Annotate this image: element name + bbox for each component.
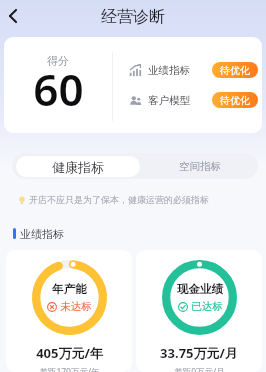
staticText: 60 (33, 59, 84, 119)
staticText: 现金业绩 (177, 282, 223, 296)
button[interactable]: 业绩指标 (129, 62, 262, 78)
button[interactable]: 客户模型 (129, 92, 262, 108)
staticText: 待优化 (220, 94, 250, 107)
staticText: 405万元/年 (36, 344, 103, 362)
staticText: 业绩指标 (148, 64, 190, 77)
button[interactable]: Back (0, 3, 26, 29)
staticText: 客户模型 (148, 94, 190, 107)
staticText: 年产能 (52, 282, 87, 296)
staticText: 待优化 (220, 64, 250, 77)
staticText: 已达标 (191, 300, 223, 313)
staticText: 开店不应只是为了保本，健康运营的必须指标 (29, 194, 209, 205)
button[interactable]: 得分 (4, 37, 262, 133)
staticText: 未达标 (60, 300, 92, 313)
staticText: 健康指标 (52, 159, 104, 175)
staticText: 空间指标 (179, 160, 221, 173)
button[interactable]: 年产能 (6, 250, 132, 372)
button[interactable]: 健康指标 (16, 156, 140, 177)
staticText: 得分 (47, 54, 69, 68)
staticText: 差距170万元/年 (39, 366, 100, 372)
staticText: 业绩指标 (20, 227, 64, 240)
staticText: 经营诊断 (101, 7, 165, 27)
staticText: 差距0万元/月 (174, 366, 225, 372)
button[interactable]: 现金业绩 (136, 250, 262, 372)
staticText: 33.75万元/月 (160, 344, 238, 362)
button[interactable]: 空间指标 (140, 153, 258, 179)
